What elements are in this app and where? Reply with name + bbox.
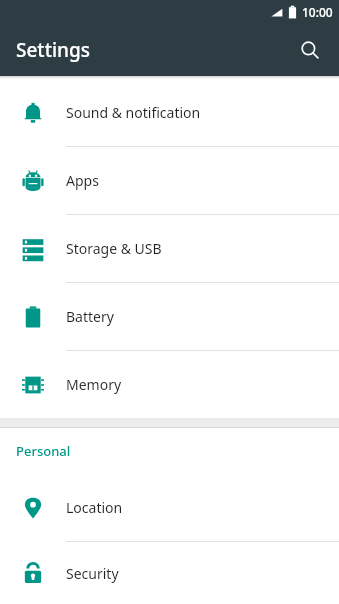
staticText: Location bbox=[66, 498, 123, 517]
staticText: Personal bbox=[16, 442, 71, 460]
staticText: Settings bbox=[16, 37, 90, 63]
button[interactable]: Memory bbox=[0, 351, 339, 418]
button[interactable]: Storage & USB bbox=[0, 215, 339, 282]
staticText: Battery bbox=[66, 307, 114, 326]
button[interactable]: Location bbox=[0, 474, 339, 541]
staticText: Storage & USB bbox=[66, 239, 162, 258]
staticText: 10:00 bbox=[302, 4, 333, 20]
button[interactable]: Security bbox=[0, 542, 339, 604]
staticText: Apps bbox=[66, 171, 99, 190]
staticText: Security bbox=[66, 564, 119, 583]
staticText: Memory bbox=[66, 375, 122, 394]
button[interactable]: Apps bbox=[0, 147, 339, 214]
button[interactable]: Sound & notification bbox=[0, 79, 339, 146]
button[interactable]: Search bbox=[289, 29, 331, 71]
staticText: Sound & notification bbox=[66, 103, 201, 122]
button[interactable]: Battery bbox=[0, 283, 339, 350]
